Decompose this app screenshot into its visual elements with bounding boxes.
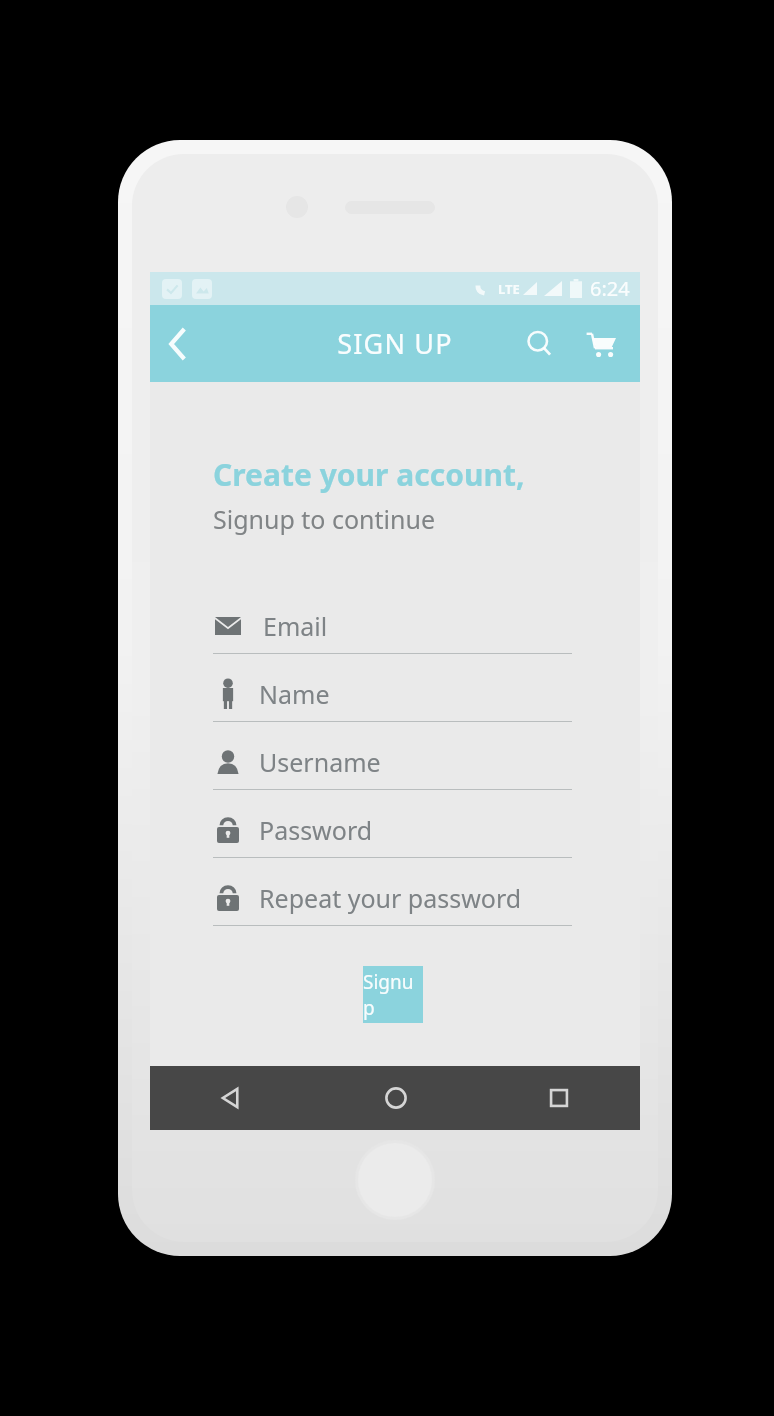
button[interactable]: Email	[213, 598, 572, 666]
staticText: Signup to continue	[213, 502, 436, 536]
button[interactable]: Repeat your password	[213, 870, 572, 938]
staticText: Password	[259, 813, 373, 847]
staticText: Username	[259, 745, 381, 779]
button[interactable]: Recents	[477, 1066, 640, 1130]
button[interactable]: Password	[213, 802, 572, 870]
staticText: Create your account,	[213, 454, 525, 495]
button[interactable]: Signup	[363, 966, 423, 1023]
staticText: SIGN UP	[337, 325, 453, 362]
staticText: LTE	[498, 280, 520, 298]
button[interactable]: Cart	[576, 319, 626, 369]
button[interactable]: Back	[150, 1066, 314, 1130]
button[interactable]: Username	[213, 734, 572, 802]
staticText: Email	[263, 609, 328, 643]
staticText: Repeat your password	[259, 881, 522, 915]
button[interactable]: Search	[515, 319, 565, 369]
staticText: Signup	[363, 969, 423, 1021]
button[interactable]: Back	[150, 316, 206, 372]
button[interactable]: Home	[314, 1066, 477, 1130]
staticText: 6:24	[590, 275, 630, 302]
button[interactable]: Name	[213, 666, 572, 734]
staticText: Name	[259, 677, 330, 711]
